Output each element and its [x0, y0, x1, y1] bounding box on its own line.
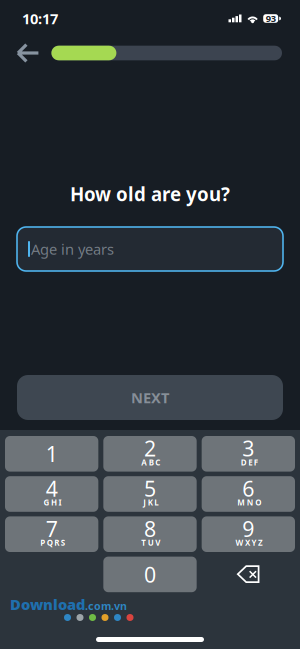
button[interactable]: Delete [202, 557, 295, 592]
button[interactable]: 6 [202, 476, 295, 512]
button[interactable]: 2 [103, 436, 197, 472]
staticText: PQRS [40, 537, 65, 548]
button[interactable]: 9 [202, 516, 295, 552]
staticText: 6 [242, 474, 254, 503]
staticText: 10:17 [22, 9, 58, 28]
staticText: 93 [266, 12, 276, 25]
staticText: 0 [144, 560, 156, 588]
staticText: 7 [46, 514, 58, 543]
button[interactable]: 0 [103, 557, 197, 592]
button[interactable]: Back [16, 43, 40, 63]
staticText: DEF [241, 457, 258, 468]
staticText: GHI [43, 497, 61, 508]
staticText: Age in years [31, 239, 114, 259]
staticText: .com.vn [85, 599, 127, 613]
staticText: 5 [144, 474, 156, 503]
button[interactable]: 7 [5, 516, 98, 552]
staticText: 1 [46, 440, 58, 468]
staticText: WXYZ [235, 537, 263, 548]
staticText: 4 [46, 474, 58, 503]
staticText: NEXT [131, 388, 169, 407]
button[interactable]: 3 [202, 436, 295, 472]
staticText: JKL [143, 497, 158, 508]
staticText: MNO [237, 497, 261, 508]
staticText: 9 [242, 514, 254, 543]
staticText: TUV [141, 537, 160, 548]
button[interactable]: 8 [103, 516, 197, 552]
staticText: How old are you? [70, 182, 230, 206]
staticText: 3 [242, 434, 254, 462]
button[interactable]: 5 [103, 476, 197, 512]
staticText: 8 [144, 514, 156, 543]
staticText: 2 [144, 434, 156, 462]
button[interactable]: NEXT [17, 375, 283, 420]
button[interactable]: 4 [5, 476, 98, 512]
staticText: Download [10, 594, 85, 614]
staticText: ABC [141, 457, 160, 468]
button[interactable]: 1 [5, 436, 98, 472]
